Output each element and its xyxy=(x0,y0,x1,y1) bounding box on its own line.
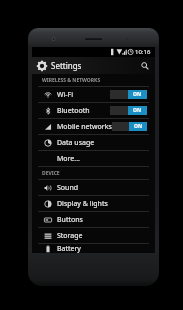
staticText: WIRELESS & NETWORKS xyxy=(42,77,101,84)
button[interactable]: Display & lights xyxy=(38,196,149,211)
button[interactable]: Storage xyxy=(38,228,149,243)
button[interactable]: Battery xyxy=(38,244,149,253)
staticText: Buttons xyxy=(57,215,83,225)
staticText: Wi-Fi xyxy=(57,90,74,100)
staticText: Mobile networks xyxy=(57,122,112,132)
button[interactable]: More... xyxy=(38,151,149,166)
button[interactable]: Bluetooth xyxy=(38,103,149,118)
staticText: Settings xyxy=(51,60,82,71)
staticText: Battery xyxy=(57,244,81,253)
button[interactable]: Search xyxy=(138,59,151,72)
staticText: Display & lights xyxy=(57,199,108,209)
button[interactable]: ON xyxy=(112,122,147,131)
staticText: Data usage xyxy=(57,138,95,148)
button[interactable]: Sound xyxy=(38,180,149,195)
staticText: DEVICE xyxy=(42,170,60,177)
staticText: 10:16 xyxy=(135,48,151,56)
staticText: More... xyxy=(57,154,80,164)
button[interactable]: Buttons xyxy=(38,212,149,227)
staticText: ON xyxy=(134,123,143,130)
button[interactable]: ON xyxy=(110,106,147,115)
staticText: Sound xyxy=(57,183,79,193)
button[interactable]: Data usage xyxy=(38,135,149,150)
button[interactable]: ON xyxy=(110,90,147,99)
staticText: Storage xyxy=(57,231,83,241)
staticText: ON xyxy=(133,107,142,114)
staticText: ON xyxy=(133,91,142,98)
button[interactable]: Mobile networks xyxy=(38,119,149,134)
staticText: Bluetooth xyxy=(57,106,90,116)
button[interactable]: Wi-Fi xyxy=(38,87,149,102)
